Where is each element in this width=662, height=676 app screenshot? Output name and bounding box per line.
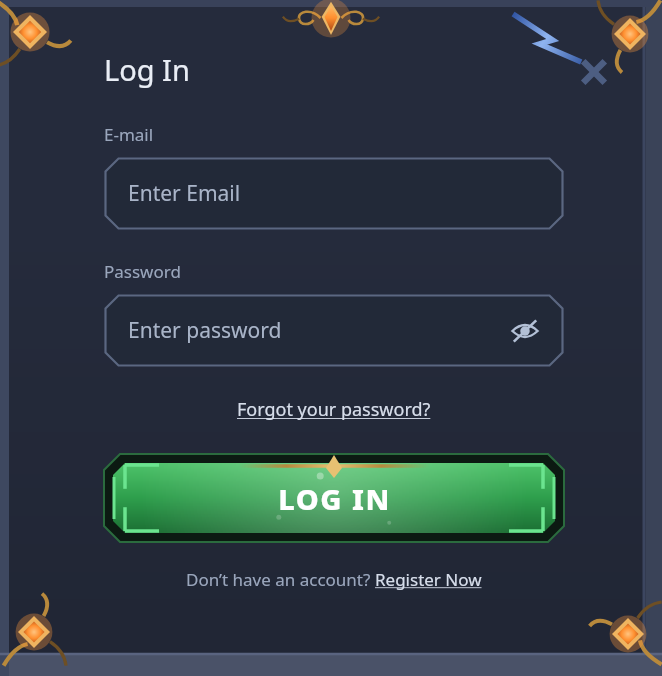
staticText: Log In xyxy=(104,50,190,89)
button[interactable]: LOG IN xyxy=(104,454,564,542)
button[interactable]: Forgot your password? xyxy=(231,394,437,425)
staticText: Enter Email xyxy=(128,179,241,208)
button[interactable]: Show password xyxy=(508,314,542,348)
staticText: Password xyxy=(104,260,181,283)
staticText: LOG IN xyxy=(278,479,391,518)
staticText: E-mail xyxy=(104,123,154,146)
button[interactable]: Close xyxy=(574,52,614,92)
staticText: Enter password xyxy=(128,316,282,345)
staticText: Register Now xyxy=(375,568,482,591)
staticText: Don’t have an account? xyxy=(186,568,375,591)
button[interactable]: Enter Email xyxy=(104,157,564,230)
staticText: Forgot your password? xyxy=(237,397,431,422)
button[interactable]: Don’t have an account? xyxy=(104,568,564,591)
button[interactable]: Enter password xyxy=(104,294,564,367)
